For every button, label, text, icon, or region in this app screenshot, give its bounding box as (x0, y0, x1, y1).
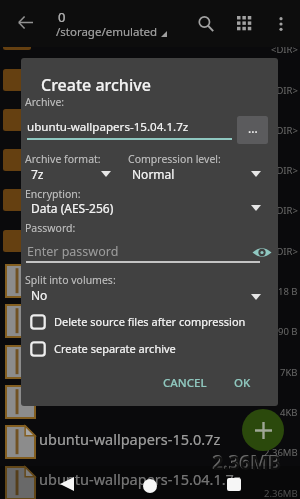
staticText: Data (AES-256) (31, 200, 114, 216)
staticText: hosts.txt (39, 308, 98, 328)
button[interactable]: Grid view (224, 0, 264, 47)
button[interactable]: OK (226, 370, 259, 396)
staticText: Normal (132, 166, 175, 182)
staticText: Archive: (25, 95, 65, 109)
staticText: Enter password (27, 243, 119, 260)
staticText: 90 B (278, 325, 298, 338)
staticText: 0 (58, 8, 66, 26)
staticText: Download (39, 147, 108, 167)
button[interactable]: Back (37, 466, 97, 499)
staticText: notes.txt (39, 388, 100, 408)
button[interactable]: Create separate archive (25, 337, 275, 360)
button[interactable]: Add (242, 409, 284, 451)
button[interactable]: Home (120, 466, 180, 499)
staticText: <DIR> (271, 164, 298, 177)
button[interactable]: Back (3, 0, 47, 44)
button[interactable]: Recents (204, 466, 264, 499)
staticText: 18 B (278, 285, 298, 298)
staticText: 2.36MB (264, 446, 298, 459)
staticText: 7KB (280, 366, 298, 379)
button[interactable]: CANCEL (155, 370, 215, 396)
button[interactable]: Search (186, 0, 226, 47)
staticText: Android (39, 66, 94, 86)
staticText: ubuntu-wallpapers-15.0.7z (39, 429, 221, 449)
staticText: DCIM (39, 106, 77, 126)
staticText: OK (234, 375, 251, 391)
staticText: Encryption: (25, 187, 81, 201)
staticText: 7z (31, 166, 44, 182)
staticText: filelist.txt (39, 268, 102, 288)
staticText: ... (248, 120, 258, 136)
staticText: 2.36MB (264, 487, 298, 499)
staticText: <DIR> (271, 84, 298, 97)
staticText: Compression level: (128, 152, 221, 166)
staticText: <DIR> (271, 245, 298, 258)
staticText: Delete source files after compression (54, 314, 246, 329)
staticText: Music (39, 227, 79, 247)
staticText: <DIR> (271, 204, 298, 217)
staticText: Password: (25, 221, 76, 235)
button[interactable]: Delete source files after compression (25, 310, 275, 333)
staticText: /storage/emulated (56, 24, 158, 40)
staticText: CANCEL (163, 375, 207, 391)
staticText: No (31, 287, 48, 303)
staticText: <DIR> (271, 43, 298, 56)
button[interactable]: Show password (250, 240, 274, 264)
staticText: readme.md (39, 348, 119, 368)
staticText: ubuntu-wallpapers-15.04.1.7z (27, 119, 189, 135)
button[interactable]: ... (237, 116, 268, 144)
staticText: ubuntu-wallpapers-15.04.1.7z (39, 469, 241, 489)
staticText: Split into volumes: (25, 273, 116, 287)
staticText: Create separate archive (54, 341, 176, 356)
staticText: 4KB (280, 406, 298, 419)
staticText: 2.36MB (213, 450, 282, 476)
staticText: 2.36MB (212, 449, 281, 475)
staticText: Alarms (39, 26, 87, 46)
button[interactable]: More options (265, 0, 297, 47)
staticText: Create archive (41, 74, 151, 96)
staticText: Movies (39, 187, 87, 207)
staticText: Archive format: (25, 152, 101, 166)
staticText: <DIR> (271, 124, 298, 137)
